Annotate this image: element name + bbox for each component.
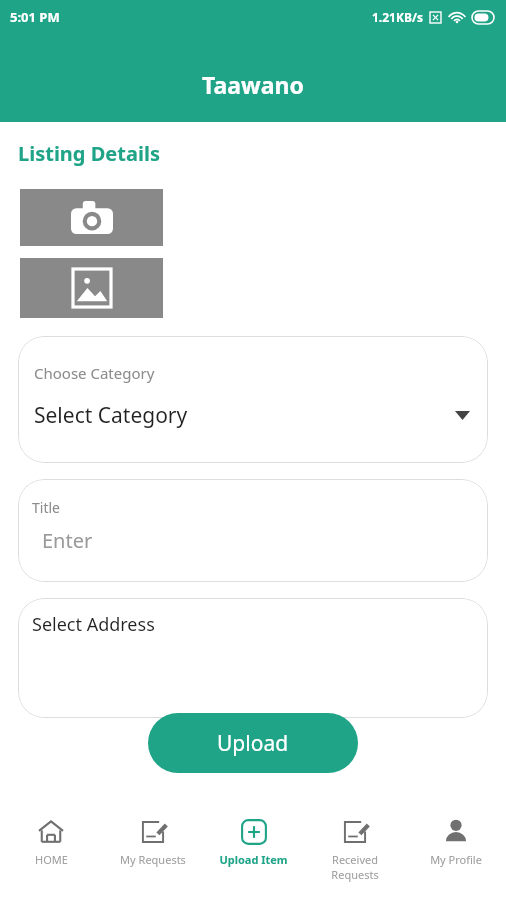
button[interactable]: Title [18, 479, 488, 582]
staticText: Select Address [32, 612, 155, 637]
button[interactable]: Take photo [20, 189, 163, 246]
staticText: 5:01 PM [10, 8, 60, 26]
staticText: My Requests [120, 852, 186, 867]
staticText: My Profile [430, 852, 482, 867]
staticText: Upload [217, 729, 289, 758]
staticText: Enter [42, 527, 93, 554]
button[interactable]: Upload [148, 713, 358, 773]
staticText: Listing Details [18, 140, 160, 167]
button[interactable]: Received Requests [304, 808, 405, 900]
button[interactable]: My Profile [405, 808, 506, 900]
button[interactable]: My Requests [102, 808, 203, 900]
staticText: Taawano [202, 69, 304, 100]
staticText: Choose Category [34, 363, 155, 383]
staticText: Received Requests [331, 852, 379, 882]
button[interactable]: Choose Category [18, 336, 488, 463]
button[interactable]: Pick from gallery [20, 258, 163, 318]
staticText: HOME [35, 852, 68, 867]
staticText: 1.21KB/s [372, 9, 423, 25]
button[interactable]: Upload Item [203, 808, 304, 900]
staticText: Select Category [34, 401, 188, 430]
staticText: Upload Item [219, 852, 288, 867]
button[interactable]: Select Address [18, 598, 488, 718]
button[interactable]: HOME [0, 808, 102, 900]
staticText: Title [32, 498, 60, 517]
